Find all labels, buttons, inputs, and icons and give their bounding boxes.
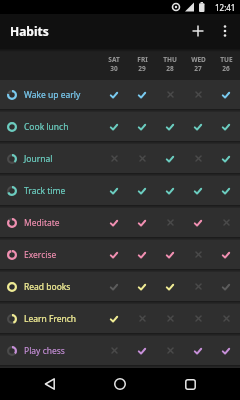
button[interactable] (38, 372, 62, 396)
button[interactable] (156, 336, 184, 365)
button[interactable]: Play chess (0, 336, 240, 365)
button[interactable] (184, 240, 212, 269)
button[interactable] (128, 240, 156, 269)
staticText: Track time (24, 185, 66, 197)
button[interactable] (156, 208, 184, 237)
button[interactable]: Wake up early (0, 80, 240, 109)
staticText: Wake up early (24, 89, 81, 101)
button[interactable] (184, 304, 212, 333)
button[interactable] (184, 112, 212, 141)
button[interactable] (100, 208, 128, 237)
button[interactable] (156, 272, 184, 301)
button[interactable]: Read books (0, 272, 240, 301)
button[interactable] (215, 21, 235, 41)
staticText: Exercise (24, 249, 57, 261)
button[interactable] (100, 272, 128, 301)
button[interactable] (156, 176, 184, 205)
button[interactable] (184, 208, 212, 237)
button[interactable]: Track time (0, 176, 240, 205)
button[interactable] (184, 336, 212, 365)
button[interactable] (212, 304, 240, 333)
staticText: Meditate (24, 217, 60, 229)
button[interactable] (178, 372, 202, 396)
staticText: Play chess (24, 345, 65, 357)
button[interactable] (100, 80, 128, 109)
button[interactable] (156, 304, 184, 333)
staticText: WED (191, 55, 206, 64)
button[interactable] (156, 112, 184, 141)
button[interactable] (212, 272, 240, 301)
button[interactable] (212, 176, 240, 205)
button[interactable] (212, 112, 240, 141)
button[interactable] (156, 144, 184, 173)
button[interactable] (212, 80, 240, 109)
button[interactable] (128, 304, 156, 333)
staticText: Learn French (24, 313, 77, 325)
button[interactable] (156, 80, 184, 109)
button[interactable] (100, 112, 128, 141)
button[interactable] (100, 336, 128, 365)
button[interactable] (186, 19, 210, 43)
staticText: 27 (194, 64, 202, 73)
button[interactable] (128, 272, 156, 301)
staticText: Cook lunch (24, 121, 69, 133)
button[interactable] (100, 240, 128, 269)
button[interactable] (128, 112, 156, 141)
staticText: Read books (24, 281, 71, 293)
button[interactable]: Exercise (0, 240, 240, 269)
button[interactable] (184, 272, 212, 301)
button[interactable] (128, 80, 156, 109)
button[interactable] (108, 372, 132, 396)
button[interactable] (184, 176, 212, 205)
staticText: 28 (166, 64, 174, 73)
button[interactable] (212, 336, 240, 365)
button[interactable] (128, 176, 156, 205)
staticText: 26 (222, 64, 230, 73)
button[interactable] (128, 144, 156, 173)
button[interactable]: Learn French (0, 304, 240, 333)
button[interactable]: Cook lunch (0, 112, 240, 141)
button[interactable]: Meditate (0, 208, 240, 237)
staticText: FRI (137, 55, 148, 64)
button[interactable] (212, 144, 240, 173)
button[interactable] (156, 240, 184, 269)
button[interactable] (128, 208, 156, 237)
button[interactable] (100, 176, 128, 205)
staticText: Journal (24, 153, 53, 165)
button[interactable] (184, 144, 212, 173)
staticText: Habits (10, 23, 49, 39)
button[interactable]: Journal (0, 144, 240, 173)
button[interactable] (184, 80, 212, 109)
staticText: SAT (108, 55, 120, 64)
button[interactable] (212, 240, 240, 269)
button[interactable] (212, 208, 240, 237)
staticText: TUE (220, 55, 233, 64)
button[interactable] (128, 336, 156, 365)
staticText: 29 (138, 64, 146, 73)
button[interactable] (100, 144, 128, 173)
staticText: THU (163, 55, 177, 64)
button[interactable] (100, 304, 128, 333)
staticText: 30 (110, 64, 118, 73)
staticText: 12:41 (215, 2, 236, 13)
